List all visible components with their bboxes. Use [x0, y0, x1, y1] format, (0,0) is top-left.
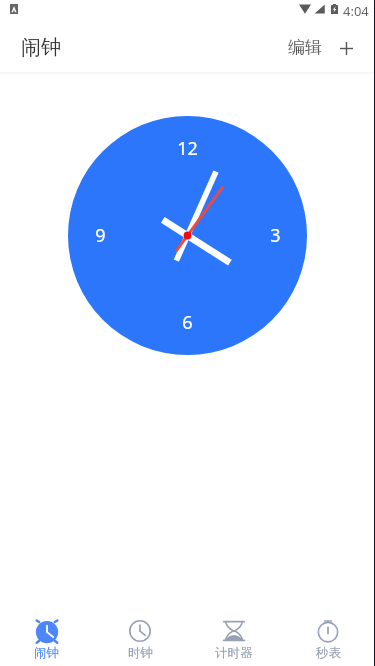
staticText: 3: [270, 223, 281, 248]
button[interactable]: Add alarm: [331, 33, 361, 63]
button[interactable]: 时钟: [93, 614, 187, 666]
staticText: 秒表: [316, 645, 341, 661]
staticText: 闹钟: [21, 35, 61, 60]
button[interactable]: 计时器: [187, 614, 281, 666]
staticText: 编辑: [288, 37, 322, 58]
staticText: 4:04: [343, 2, 369, 20]
staticText: 9: [95, 223, 106, 248]
staticText: 12: [177, 136, 198, 161]
button[interactable]: 闹钟: [0, 614, 93, 666]
staticText: 6: [182, 310, 193, 335]
staticText: 时钟: [128, 645, 153, 661]
button[interactable]: 秒表: [281, 614, 375, 666]
staticText: 闹钟: [34, 645, 59, 661]
staticText: 计时器: [215, 645, 253, 661]
button[interactable]: 编辑: [282, 31, 328, 64]
